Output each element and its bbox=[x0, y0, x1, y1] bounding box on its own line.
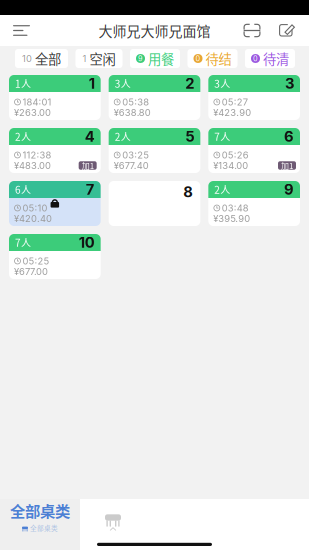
button[interactable]: 2人 bbox=[208, 181, 300, 226]
staticText: ¥677.00 bbox=[14, 266, 48, 277]
staticText: 8 bbox=[183, 183, 193, 201]
staticText: 112:38 bbox=[22, 149, 51, 161]
staticText: 7 bbox=[86, 181, 95, 198]
staticText: 9 bbox=[284, 181, 294, 198]
staticText: 0 bbox=[253, 54, 258, 63]
staticText: 05:26 bbox=[222, 149, 249, 161]
staticText: 2人 bbox=[15, 129, 31, 144]
staticText: 3人 bbox=[115, 76, 131, 91]
staticText: 3 bbox=[285, 75, 294, 92]
button[interactable]: Table category bbox=[80, 499, 146, 550]
staticText: 05:27 bbox=[222, 96, 248, 108]
staticText: 2人 bbox=[214, 182, 230, 197]
staticText: 待清 bbox=[263, 49, 289, 68]
staticText: 05:38 bbox=[122, 96, 149, 108]
staticText: 7人 bbox=[214, 129, 230, 144]
button[interactable]: 6人 bbox=[9, 181, 101, 226]
staticText: 7人 bbox=[15, 235, 31, 250]
button[interactable]: Scan bbox=[242, 15, 262, 46]
staticText: 6 bbox=[284, 128, 294, 145]
staticText: 用餐 bbox=[148, 49, 174, 68]
button[interactable]: 2人 bbox=[109, 128, 200, 173]
staticText: 6人 bbox=[15, 182, 31, 197]
staticText: 2 bbox=[185, 75, 194, 92]
staticText: 10 bbox=[22, 53, 32, 64]
button[interactable]: 0 bbox=[245, 49, 295, 68]
staticText: 2人 bbox=[115, 129, 131, 144]
staticText: 184:01 bbox=[22, 96, 51, 108]
staticText: 加1 bbox=[281, 160, 293, 171]
button[interactable]: 0 bbox=[187, 49, 237, 68]
staticText: 03:48 bbox=[222, 202, 249, 214]
button[interactable]: 1 bbox=[75, 49, 122, 68]
button[interactable]: 3人 bbox=[208, 75, 300, 120]
staticText: 0 bbox=[195, 54, 200, 63]
staticText: 10 bbox=[79, 234, 95, 251]
staticText: 1人 bbox=[15, 76, 31, 91]
staticText: 4 bbox=[85, 128, 95, 145]
staticText: 03:25 bbox=[122, 149, 149, 161]
button[interactable]: 8 bbox=[109, 181, 200, 226]
staticText: 大师兄大师兄面馆 bbox=[98, 20, 210, 41]
staticText: ¥638.80 bbox=[114, 107, 151, 118]
staticText: ¥263.00 bbox=[14, 107, 51, 118]
staticText: 加1 bbox=[82, 160, 94, 171]
staticText: ¥677.40 bbox=[114, 160, 149, 171]
staticText: ¥483.00 bbox=[14, 160, 51, 171]
button[interactable]: 2人 bbox=[9, 128, 101, 173]
button[interactable]: 10 bbox=[15, 49, 68, 68]
button[interactable]: Menu bbox=[0, 15, 40, 46]
button[interactable]: 7人 bbox=[9, 234, 101, 279]
staticText: 1 bbox=[89, 75, 95, 92]
staticText: 9 bbox=[138, 54, 143, 63]
staticText: 待结 bbox=[205, 49, 231, 68]
staticText: 05:10 bbox=[22, 202, 47, 214]
staticText: 全部桌类 bbox=[10, 499, 70, 521]
button[interactable]: 3人 bbox=[109, 75, 200, 120]
staticText: 3人 bbox=[214, 76, 230, 91]
button[interactable]: Compose bbox=[278, 15, 297, 46]
button[interactable]: 1人 bbox=[9, 75, 101, 120]
staticText: ¥420.40 bbox=[14, 213, 52, 224]
button[interactable]: 7人 bbox=[208, 128, 300, 173]
staticText: ¥423.90 bbox=[213, 107, 251, 118]
staticText: 全部桌类 bbox=[30, 523, 58, 533]
button[interactable]: 全部桌类 bbox=[0, 499, 80, 550]
staticText: 空闲 bbox=[89, 49, 115, 68]
staticText: ¥395.90 bbox=[213, 213, 250, 224]
button[interactable]: 9 bbox=[130, 49, 180, 68]
staticText: 1 bbox=[82, 53, 86, 64]
staticText: ¥134.00 bbox=[213, 160, 248, 171]
staticText: 全部 bbox=[35, 49, 61, 68]
staticText: 5 bbox=[185, 128, 194, 145]
staticText: 05:25 bbox=[22, 255, 49, 267]
